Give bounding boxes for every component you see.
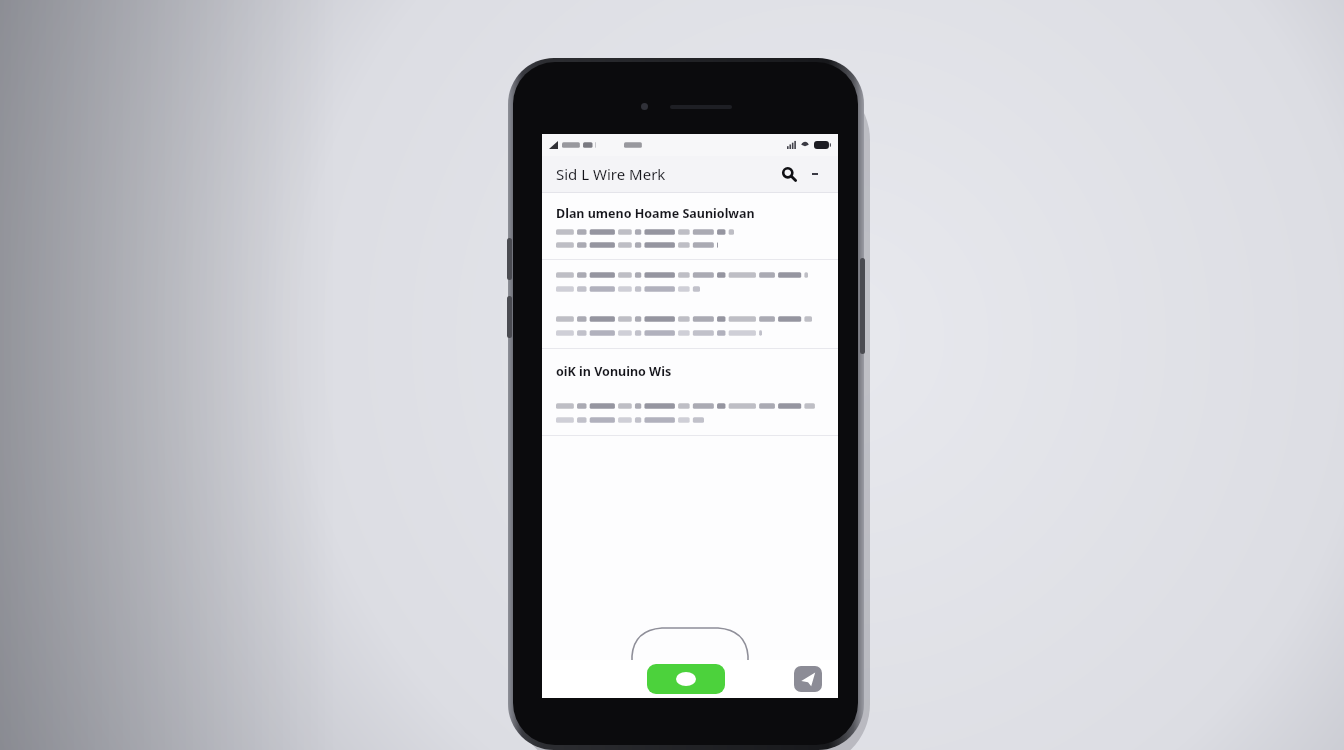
button[interactable] bbox=[542, 304, 838, 348]
button[interactable]: Search bbox=[774, 159, 804, 189]
button[interactable]: Send bbox=[794, 666, 822, 692]
button[interactable]: Dlan umeno Hoame Sauniolwan bbox=[542, 193, 838, 259]
staticText: Dlan umeno Hoame Sauniolwan bbox=[556, 205, 755, 222]
button[interactable] bbox=[542, 260, 838, 304]
button[interactable]: More options bbox=[804, 163, 826, 185]
button[interactable] bbox=[542, 391, 838, 435]
staticText: oiK in Vonuino Wis bbox=[556, 363, 672, 380]
button[interactable]: oiK in Vonuino Wis bbox=[542, 349, 838, 391]
button[interactable]: Record bbox=[647, 664, 725, 694]
staticText: Sid L Wire Merk bbox=[556, 164, 666, 184]
